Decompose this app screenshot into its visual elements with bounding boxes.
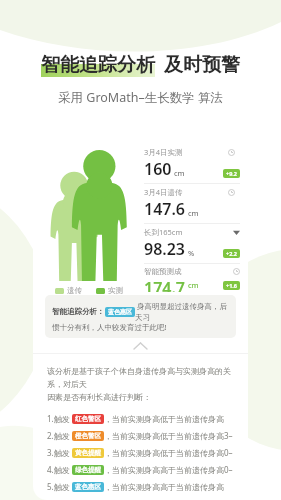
staticText: ，当前实测身高低于当前遗传身高0–3cm； (104, 447, 236, 458)
button[interactable]: 5.触发 (47, 481, 236, 492)
staticText: +1.6 (226, 282, 237, 289)
staticText: 蓝色惠区 (75, 483, 101, 491)
staticText: 该分析是基于孩子个体自身遗传身高与实测身高的关系，对后天 因素是否有利长高进行判… (47, 366, 236, 402)
staticText: 绿色提醒 (75, 466, 101, 474)
button[interactable]: 3月4日实测 (144, 144, 240, 183)
staticText: 147.6 (144, 198, 186, 220)
staticText: 红色警区 (75, 415, 101, 423)
button[interactable]: Collapse (33, 338, 248, 353)
staticText: +9.2 (226, 170, 237, 177)
staticText: 1.触发 (47, 413, 70, 424)
staticText: 3月4日遗传 (144, 187, 183, 197)
button[interactable]: 4.触发 (47, 464, 236, 475)
button[interactable]: 智能预测成年 (144, 264, 240, 295)
staticText: 智能预测成年 (144, 267, 188, 276)
staticText: 智能追踪分析： (52, 307, 105, 316)
button[interactable]: 1.触发 (47, 413, 236, 424)
staticText: 智能追踪分析 (41, 53, 155, 77)
staticText: 5.触发 (47, 481, 70, 492)
staticText: ，当前实测身高高于当前遗传身高4cm以上； (104, 482, 236, 492)
button[interactable]: 遗传 (55, 286, 82, 295)
staticText: +2.2 (226, 250, 237, 257)
staticText: 蓝色惠区 (108, 308, 132, 316)
staticText: 174.7 (144, 277, 186, 292)
staticText: 160 (144, 158, 172, 180)
staticText: % (188, 248, 195, 258)
staticText: cm (188, 280, 199, 290)
staticText: cm (188, 208, 199, 218)
staticText: 3.触发 (47, 447, 70, 458)
staticText: 长到165cm概率 (144, 227, 188, 237)
staticText: 3月4日实测 (144, 147, 183, 157)
staticText: 及时预警 (164, 53, 240, 77)
staticText: 橙色警区 (75, 432, 101, 440)
staticText: 惯十分有利，人中较发育过于此吧! (52, 322, 167, 332)
staticText: 身高明显超过遗传身高，后天习 (135, 301, 229, 322)
staticText: 采用 GroMath–生长数学 算法 (0, 89, 281, 106)
staticText: ，当前实测身高低于当前遗传身高3–6cm； (104, 430, 236, 441)
staticText: ，当前实测身高高于当前遗传身高0–4cm； (104, 464, 236, 475)
staticText: 98.23 (144, 238, 186, 260)
button[interactable]: 长到165cm概率 (144, 224, 240, 263)
staticText: 4.触发 (47, 464, 70, 475)
button[interactable]: 实测 (96, 286, 123, 295)
button[interactable]: 3.触发 (47, 447, 236, 458)
staticText: 遗传 (67, 286, 82, 295)
staticText: cm (174, 168, 185, 178)
staticText: 实测 (108, 286, 123, 295)
button[interactable]: 3月4日遗传 (144, 184, 240, 223)
staticText: 2.触发 (47, 430, 70, 441)
staticText: 黄色提醒 (75, 449, 101, 457)
staticText: ，当前实测身高低于当前遗传身高6cm以上； (104, 414, 236, 424)
button[interactable]: 2.触发 (47, 430, 236, 441)
